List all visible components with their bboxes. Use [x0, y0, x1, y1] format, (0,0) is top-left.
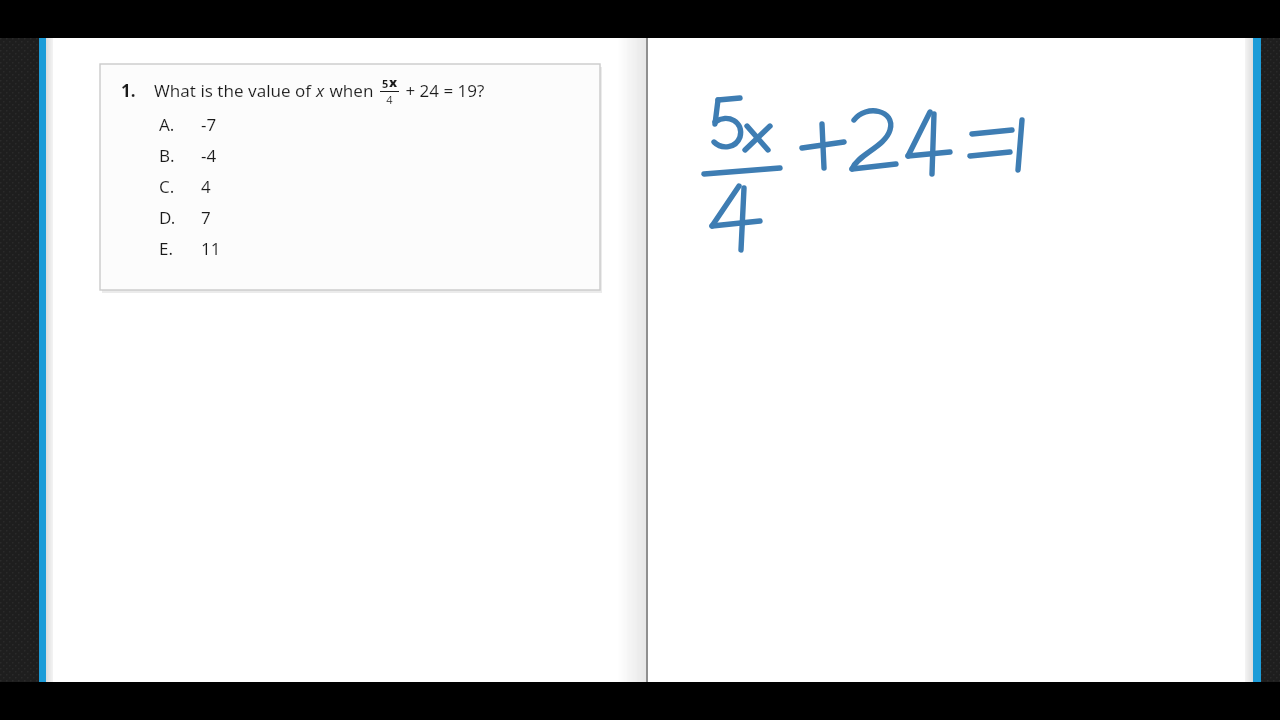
staticText: -4 [201, 144, 217, 167]
staticText: 4 [386, 92, 393, 107]
staticText: What is the value of [154, 79, 316, 102]
button[interactable]: C. [159, 171, 319, 202]
button[interactable]: A. [159, 109, 319, 140]
staticText: -7 [201, 113, 217, 136]
button[interactable]: E. [159, 233, 319, 264]
staticText: x [316, 79, 325, 102]
other: Handwritten solution work [648, 38, 1245, 682]
staticText: B. [159, 144, 191, 167]
button[interactable]: 1. [100, 64, 600, 290]
staticText: x [389, 73, 398, 91]
staticText: C. [159, 175, 191, 198]
staticText: 1. [121, 79, 136, 102]
staticText: E. [159, 237, 191, 260]
staticText: D. [159, 206, 191, 229]
staticText: A. [159, 113, 191, 136]
staticText: 11 [201, 237, 221, 260]
staticText: 7 [201, 206, 211, 229]
staticText: 4 [201, 175, 211, 198]
button[interactable]: B. [159, 140, 319, 171]
staticText: 5 [382, 76, 389, 91]
staticText: + 24 = 19? [401, 79, 485, 102]
staticText: when [325, 79, 378, 102]
button[interactable]: D. [159, 202, 319, 233]
